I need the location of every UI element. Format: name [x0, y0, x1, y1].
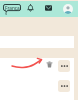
- button[interactable]: Profile: [63, 4, 73, 14]
- button[interactable]: Delete: [46, 61, 53, 68]
- button[interactable]: More options: [58, 60, 70, 72]
- button[interactable]: More options: [58, 80, 70, 92]
- button[interactable]: Notifications: [27, 4, 34, 12]
- staticText: Français: [5, 5, 23, 15]
- button[interactable]: Français: [3, 4, 21, 14]
- button[interactable]: Messages: [45, 5, 52, 11]
